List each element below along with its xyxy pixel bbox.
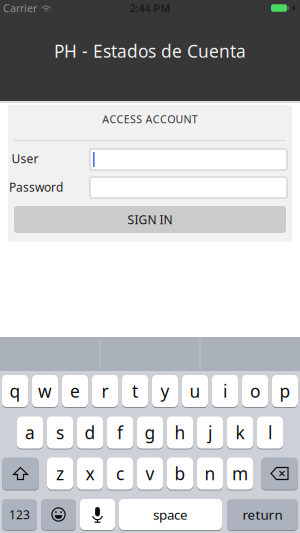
staticText: f [117,421,123,444]
staticText: d [84,421,95,444]
staticText: e [70,379,80,402]
button[interactable]: s [47,415,73,449]
staticText: a [25,421,35,444]
button[interactable]: Password [90,177,287,198]
button[interactable]: v [137,456,163,490]
staticText: w [38,379,52,402]
button[interactable]: User [90,149,287,170]
button[interactable]: t [122,374,148,408]
staticText: v [145,462,154,485]
button[interactable]: k [227,415,253,449]
staticText: m [232,462,248,485]
staticText: q [9,379,20,402]
button[interactable]: SIGN IN [14,206,286,233]
staticText: 123 [9,506,30,522]
button[interactable]: n [197,456,223,490]
staticText: PH - Estados de Cuenta [54,39,246,62]
staticText: l [268,421,272,444]
button[interactable]: d [77,415,103,449]
staticText: b [174,462,185,485]
staticText: User [11,150,38,166]
button[interactable]: i [212,374,238,408]
button[interactable]: w [32,374,58,408]
button[interactable]: g [137,415,163,449]
button[interactable]: e [62,374,88,408]
button[interactable]: space [119,498,222,531]
button[interactable]: c [107,456,133,490]
button[interactable]: j [197,415,223,449]
staticText: y [160,379,169,402]
button[interactable]: q [2,374,28,408]
staticText: c [116,462,124,485]
staticText: s [56,421,64,444]
staticText: Password [9,179,63,195]
button[interactable]: f [107,415,133,449]
button[interactable]: h [167,415,193,449]
staticText: j [208,421,212,444]
staticText: t [132,379,138,402]
button[interactable]: Delete [261,456,298,490]
button[interactable]: Dictate [80,498,115,531]
button[interactable]: 123 [2,498,37,531]
staticText: p [279,379,290,402]
staticText: i [223,379,227,402]
staticText: space [153,506,188,523]
staticText: n [204,462,215,485]
staticText: g [144,421,155,444]
button[interactable]: return [227,498,298,531]
button[interactable]: z [47,456,73,490]
staticText: x [85,462,94,485]
staticText: r [101,379,108,402]
button[interactable]: p [272,374,298,408]
button[interactable]: x [77,456,103,490]
button[interactable]: b [167,456,193,490]
staticText: u [189,379,200,402]
button[interactable]: Emoji [41,498,76,531]
staticText: z [56,462,64,485]
staticText: return [242,506,282,523]
button[interactable]: u [182,374,208,408]
button[interactable]: l [257,415,283,449]
button[interactable]: m [227,456,253,490]
staticText: o [250,379,260,402]
staticText: ACCESS ACCOUNT [102,112,198,126]
staticText: k [235,421,244,444]
button[interactable]: a [17,415,43,449]
button[interactable]: r [92,374,118,408]
button[interactable]: Shift [2,456,39,490]
staticText: SIGN IN [127,211,172,227]
button[interactable]: o [242,374,268,408]
button[interactable]: y [152,374,178,408]
staticText: Carrier [3,1,37,15]
staticText: 2:44 PM [129,1,170,15]
staticText: h [174,421,185,444]
